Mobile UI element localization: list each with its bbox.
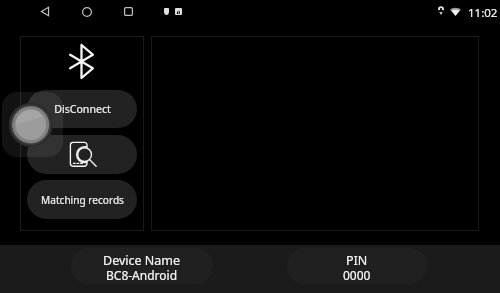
button[interactable]: Recent apps xyxy=(116,0,140,23)
button[interactable]: Matching records xyxy=(27,180,137,219)
staticText: DisConnect xyxy=(54,102,111,116)
button[interactable]: DisConnect xyxy=(27,90,137,128)
button[interactable]: Home xyxy=(74,0,99,23)
staticText: BC8-Android xyxy=(106,267,178,283)
staticText: PIN xyxy=(346,252,368,269)
staticText: 0000 xyxy=(343,267,371,283)
staticText: Matching records xyxy=(41,193,124,207)
staticText: 11:02 xyxy=(468,5,498,21)
staticText: Device Name xyxy=(103,252,181,269)
button[interactable]: Device Name xyxy=(71,248,213,284)
button[interactable]: Search device xyxy=(27,135,137,174)
button[interactable]: Back xyxy=(33,0,57,23)
button[interactable]: PIN xyxy=(287,248,427,284)
